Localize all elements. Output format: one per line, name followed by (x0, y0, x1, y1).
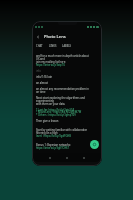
staticText: on time (36, 90, 46, 94)
staticText: join my mailing list here: (36, 60, 66, 64)
staticText: * Others : https://bit.ly/3gmp709 (36, 113, 76, 117)
button[interactable]: Back (33, 32, 101, 41)
staticText: https://interia.ly/3ztpTU (36, 63, 66, 67)
staticText: LABELS (62, 44, 72, 48)
staticText: an almost (36, 81, 49, 85)
staticText: Start by getting familiar with collabora… (36, 128, 88, 132)
staticText: an almost any recommendation problem in (36, 87, 89, 91)
other: Back (36, 35, 40, 39)
staticText: with them on your data. (36, 102, 66, 106)
staticText: Then give a lesson (36, 119, 59, 123)
button[interactable]: CHAT (36, 44, 43, 48)
staticText: info (36, 69, 41, 73)
staticText: filtering on a high (36, 131, 58, 135)
staticText: experimenting (36, 99, 54, 103)
staticText: Next: start exploring the algorithms and (36, 96, 85, 100)
button[interactable]: LABELS (62, 44, 72, 48)
staticText: Photo Lens (44, 34, 66, 39)
staticText: CHAT (36, 44, 43, 48)
staticText: info/1:55 late (36, 75, 53, 79)
staticText: * Last.fm: https://bit.ly/3gtr3GE (36, 108, 75, 112)
button[interactable]: LINKS (49, 44, 57, 48)
staticText: https://interia.ly/3gKTCH67 (36, 146, 70, 150)
button[interactable]: New chat (90, 140, 99, 149)
staticText: LINKS (49, 44, 57, 48)
staticText: * MovieLens: https://bit.ly/2gRcW7W (36, 110, 82, 114)
staticText: Bonus 1: Bayesian networks: (36, 143, 71, 147)
staticText: level: https://bit.ly/3gdFGHB (36, 134, 71, 138)
staticText: UX and (36, 57, 45, 61)
staticText: and for a much more in-depth article abo… (36, 54, 89, 58)
